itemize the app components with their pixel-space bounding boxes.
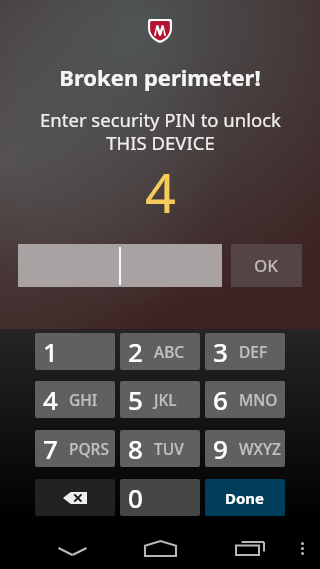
staticText: 0 [128,480,143,515]
button[interactable]: 4 [35,381,115,418]
staticText: 2 [128,334,143,369]
staticText: 4 [145,155,176,229]
staticText: 5 [128,382,143,417]
staticText: MNO [239,389,278,410]
button[interactable]: Hide keyboard [36,528,108,569]
button[interactable]: 0 [120,479,200,516]
staticText: OK [254,254,279,277]
button[interactable]: 3 [205,333,285,370]
staticText: DEF [239,341,268,362]
button[interactable] [18,244,222,287]
staticText: Enter security PIN to unlock THIS DEVICE [40,107,281,155]
staticText: 8 [128,431,143,466]
button[interactable]: 1 [35,333,115,370]
button[interactable]: 2 [120,333,200,370]
staticText: PQRS [69,438,109,459]
staticText: 3 [213,334,228,369]
staticText: WXYZ [239,438,282,459]
staticText: JKL [154,389,177,410]
button[interactable]: Done [205,479,285,516]
button[interactable]: 6 [205,381,285,418]
staticText: GHI [69,389,98,410]
button[interactable]: Home [124,525,196,569]
staticText: 4 [43,382,58,417]
staticText: Done [225,488,265,508]
button[interactable]: Recent apps [214,525,286,569]
staticText: 9 [213,431,228,466]
button[interactable]: 9 [205,430,285,467]
button[interactable]: OK [231,244,302,287]
staticText: 1 [43,334,58,369]
staticText: ABC [154,341,185,362]
button[interactable]: More options [286,525,318,569]
button[interactable]: 7 [35,430,115,467]
staticText: TUV [154,438,184,459]
staticText: 6 [213,382,228,417]
button[interactable]: 8 [120,430,200,467]
staticText: 7 [43,431,58,466]
button[interactable]: Backspace [35,479,115,516]
staticText: Broken perimeter! [59,62,261,92]
button[interactable]: 5 [120,381,200,418]
